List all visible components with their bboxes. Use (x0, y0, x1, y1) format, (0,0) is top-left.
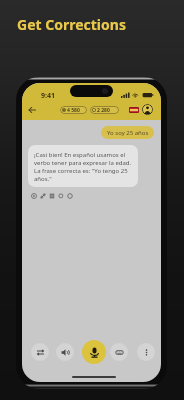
button[interactable]: Play audio (29, 191, 38, 200)
button[interactable]: 4 580 (60, 106, 87, 114)
button[interactable]: Yo soy 25 años (101, 126, 154, 139)
button[interactable]: Translate (47, 191, 56, 200)
button[interactable]: Play slowly (38, 191, 47, 200)
button[interactable]: Language: Spanish (129, 107, 139, 113)
button[interactable]: Microphone (82, 340, 106, 364)
staticText: Yo soy 25 años (107, 129, 149, 137)
staticText: 4 580 (67, 107, 80, 114)
button[interactable]: More options (137, 343, 155, 361)
button[interactable]: Switch language (31, 343, 49, 361)
button[interactable]: 2 280 (90, 106, 119, 114)
button[interactable]: Copy (56, 191, 65, 200)
button[interactable]: Speaker (56, 343, 74, 361)
staticText: ¡Casi bien! En español usamos el verbo t… (34, 151, 135, 183)
button[interactable]: ¡Casi bien! En español usamos el verbo t… (28, 145, 138, 187)
button[interactable]: Back (25, 103, 39, 117)
button[interactable]: Keyboard (110, 343, 128, 361)
staticText: 2 280 (97, 107, 110, 114)
button[interactable]: Profile (142, 104, 153, 115)
staticText: 9:41 (41, 91, 55, 101)
button[interactable]: Regenerate (65, 191, 74, 200)
staticText: Get Corrections (17, 15, 126, 34)
